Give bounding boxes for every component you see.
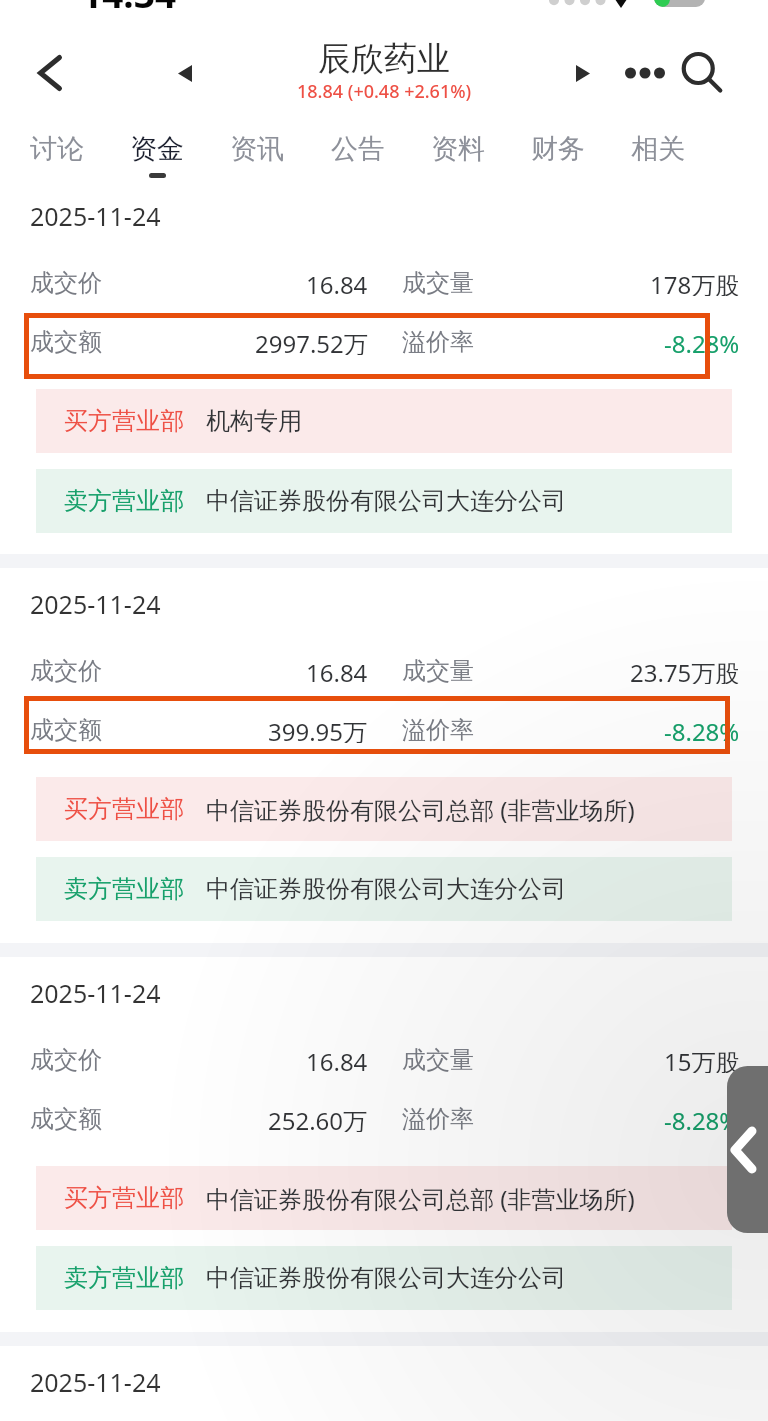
button[interactable]: More options bbox=[618, 46, 672, 100]
staticText: 资讯 bbox=[230, 132, 284, 166]
button[interactable]: 卖方营业部 bbox=[36, 469, 732, 533]
staticText: 中信证券股份有限公司大连分公司 bbox=[206, 874, 566, 904]
staticText: 16.84 bbox=[306, 656, 368, 684]
staticText: 卖方营业部 bbox=[64, 874, 184, 904]
staticText: 卖方营业部 bbox=[64, 486, 184, 516]
staticText: 252.60万 bbox=[268, 1104, 368, 1132]
button[interactable]: 讨论 bbox=[12, 132, 102, 178]
button[interactable]: 买方营业部 bbox=[36, 1166, 732, 1230]
staticText: 成交量 bbox=[402, 656, 474, 684]
staticText: 中信证券股份有限公司总部 (非营业场所) bbox=[206, 793, 635, 826]
staticText: -8.28% bbox=[664, 327, 740, 355]
button[interactable]: 公告 bbox=[313, 132, 403, 178]
button[interactable]: 资讯 bbox=[212, 132, 302, 178]
staticText: 资金 bbox=[130, 132, 184, 166]
staticText: 16.84 bbox=[306, 268, 368, 296]
button[interactable]: 资料 bbox=[413, 132, 503, 178]
button[interactable]: Next stock bbox=[556, 46, 610, 100]
staticText: 成交价 bbox=[30, 656, 102, 684]
staticText: 成交价 bbox=[30, 268, 102, 296]
staticText: 中信证券股份有限公司总部 (非营业场所) bbox=[206, 1182, 635, 1215]
button[interactable]: Expand panel bbox=[727, 1066, 768, 1233]
staticText: 讨论 bbox=[30, 132, 84, 166]
staticText: 买方营业部 bbox=[64, 1183, 184, 1213]
staticText: 财务 bbox=[531, 132, 585, 166]
button[interactable]: Search bbox=[673, 45, 727, 99]
staticText: 15万股 bbox=[664, 1045, 740, 1073]
button[interactable]: 买方营业部 bbox=[36, 777, 732, 841]
staticText: 卖方营业部 bbox=[64, 1263, 184, 1293]
staticText: 中信证券股份有限公司大连分公司 bbox=[206, 1263, 566, 1293]
staticText: 23.75万股 bbox=[630, 656, 740, 684]
button[interactable]: 资金 bbox=[112, 132, 202, 178]
staticText: 2025-11-24 bbox=[30, 587, 161, 621]
staticText: 成交价 bbox=[30, 1045, 102, 1073]
staticText: -8.28% bbox=[664, 715, 740, 743]
staticText: 成交额 bbox=[30, 1104, 102, 1132]
staticText: 买方营业部 bbox=[64, 406, 184, 436]
staticText: 机构专用 bbox=[206, 406, 302, 436]
staticText: 178万股 bbox=[650, 268, 740, 296]
staticText: 成交额 bbox=[30, 327, 102, 355]
staticText: 相关 bbox=[631, 132, 685, 166]
staticText: 成交额 bbox=[30, 715, 102, 743]
button[interactable]: 买方营业部 bbox=[36, 389, 732, 453]
staticText: 2997.52万 bbox=[255, 327, 368, 355]
staticText: 辰欣药业 bbox=[318, 38, 450, 80]
staticText: 买方营业部 bbox=[64, 794, 184, 824]
button[interactable]: 相关 bbox=[613, 132, 703, 178]
staticText: 溢价率 bbox=[402, 715, 474, 743]
staticText: 18.84 (+0.48 +2.61%) bbox=[297, 79, 472, 104]
staticText: 16.84 bbox=[306, 1045, 368, 1073]
staticText: 溢价率 bbox=[402, 1104, 474, 1132]
staticText: 资料 bbox=[431, 132, 485, 166]
staticText: 成交量 bbox=[402, 1045, 474, 1073]
staticText: 2025-11-24 bbox=[30, 976, 161, 1010]
staticText: -8.28% bbox=[664, 1104, 740, 1132]
staticText: 14:34 bbox=[81, 0, 177, 18]
staticText: 溢价率 bbox=[402, 327, 474, 355]
button[interactable]: 财务 bbox=[513, 132, 603, 178]
button[interactable]: Previous stock bbox=[158, 46, 212, 100]
button[interactable]: 卖方营业部 bbox=[36, 857, 732, 921]
staticText: 公告 bbox=[331, 132, 385, 166]
staticText: 399.95万 bbox=[268, 715, 368, 743]
staticText: 成交量 bbox=[402, 268, 474, 296]
staticText: 中信证券股份有限公司大连分公司 bbox=[206, 486, 566, 516]
staticText: 2025-11-24 bbox=[30, 1365, 161, 1399]
button[interactable]: Back bbox=[20, 43, 80, 103]
staticText: 2025-11-24 bbox=[30, 199, 161, 233]
button[interactable]: 卖方营业部 bbox=[36, 1246, 732, 1310]
